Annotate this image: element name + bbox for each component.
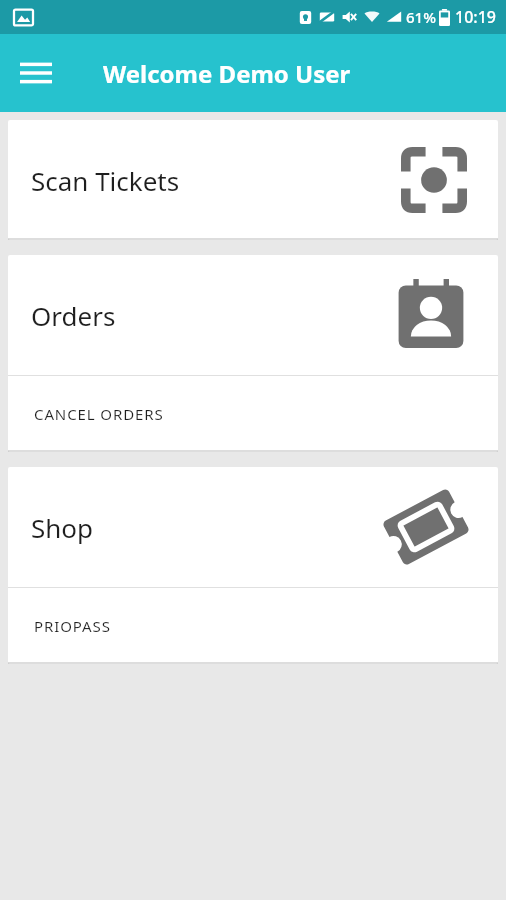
staticText: Scan Tickets [31, 163, 180, 198]
button[interactable]: Orders [8, 255, 498, 375]
button[interactable]: CANCEL ORDERS [8, 376, 498, 452]
button[interactable]: Open navigation menu [12, 49, 60, 97]
staticText: Orders [31, 298, 116, 333]
staticText: Welcome Demo User [103, 57, 351, 90]
button[interactable]: PRIOPASS [8, 588, 498, 664]
button[interactable]: Shop [8, 467, 498, 587]
staticText: CANCEL ORDERS [34, 404, 164, 424]
staticText: Shop [31, 510, 94, 545]
button[interactable]: Scan Tickets [8, 120, 498, 240]
staticText: PRIOPASS [34, 616, 111, 636]
staticText: 10:19 [455, 6, 496, 28]
staticText: 61% [406, 7, 436, 27]
